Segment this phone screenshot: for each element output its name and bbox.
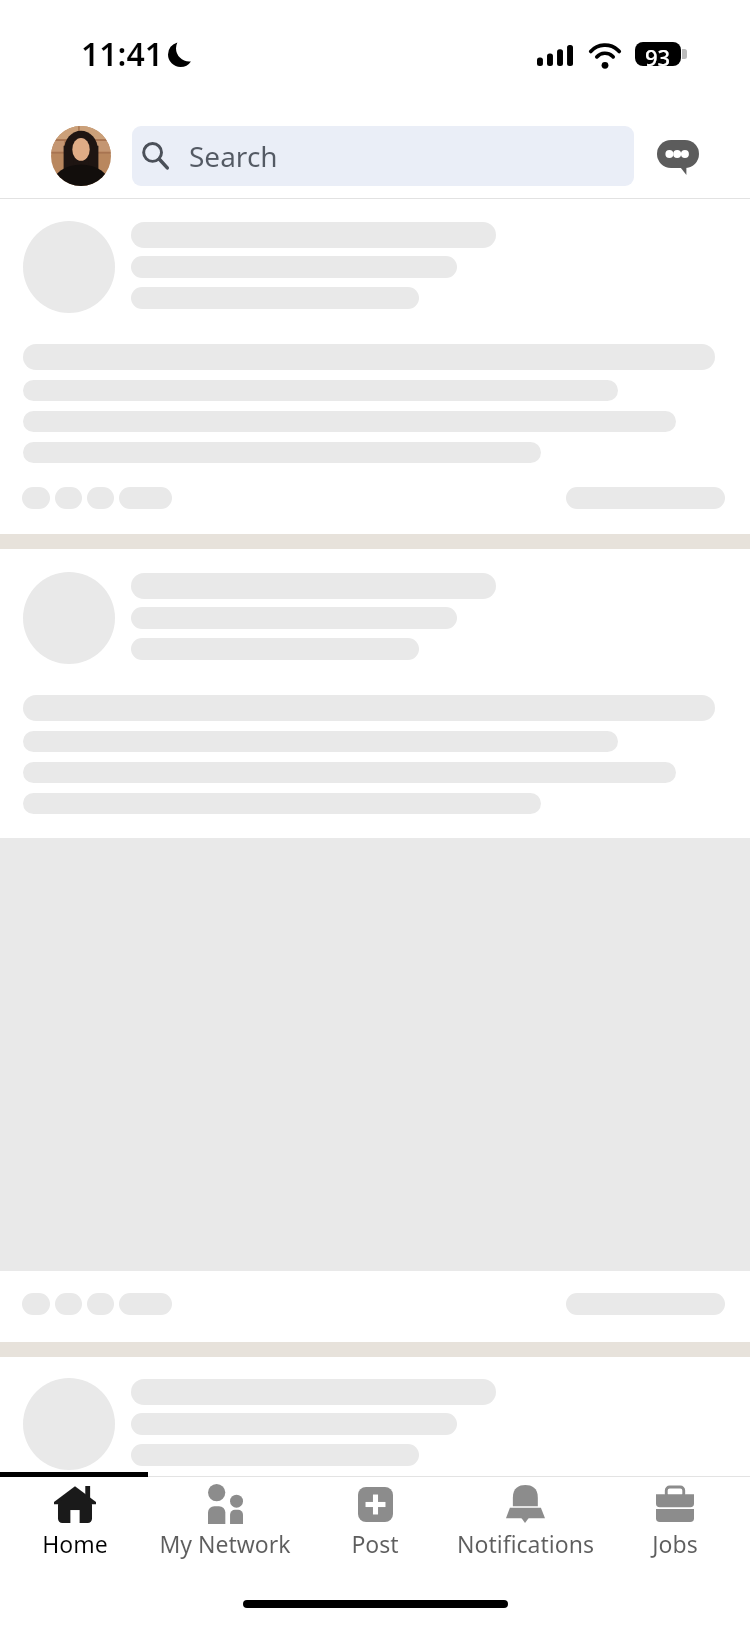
button[interactable]: Profile — [51, 126, 111, 186]
staticText: Search — [189, 137, 278, 175]
button[interactable]: Home — [0, 1484, 150, 1559]
button[interactable] — [0, 1357, 750, 1470]
button[interactable]: Search — [132, 126, 634, 186]
button[interactable]: My Network — [150, 1484, 300, 1559]
button[interactable]: Messaging — [640, 122, 714, 192]
button[interactable]: Jobs — [600, 1484, 750, 1559]
button[interactable] — [0, 199, 750, 534]
staticText: Jobs — [652, 1528, 698, 1559]
staticText: Notifications — [457, 1528, 594, 1559]
button[interactable]: Notifications — [450, 1484, 600, 1559]
staticText: Home — [42, 1528, 108, 1559]
staticText: Post — [351, 1528, 399, 1559]
staticText: 93 — [645, 42, 671, 66]
staticText: 11:41 — [81, 32, 164, 76]
button[interactable] — [0, 549, 750, 1342]
button[interactable]: Post — [300, 1484, 450, 1559]
staticText: My Network — [159, 1528, 291, 1559]
